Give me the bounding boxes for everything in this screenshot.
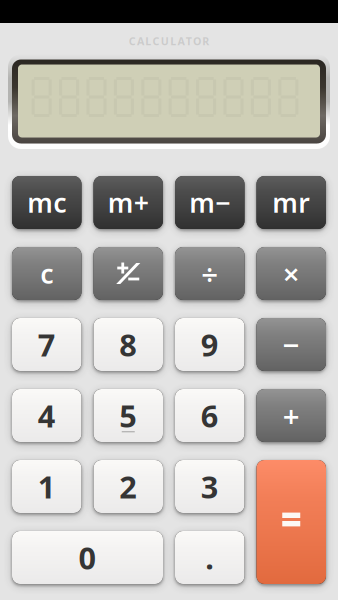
button[interactable]: − <box>256 318 326 371</box>
button[interactable]: 7 <box>12 318 81 371</box>
button[interactable]: 6 <box>175 389 244 442</box>
button[interactable]: m− <box>175 176 244 229</box>
staticText: . <box>205 537 214 578</box>
button[interactable]: 8 <box>93 318 163 371</box>
staticText: 6 <box>201 395 219 436</box>
staticText: m− <box>189 185 230 220</box>
staticText: CALCULATOR <box>129 34 209 48</box>
button[interactable]: 5 <box>93 389 163 442</box>
button[interactable]: 0 <box>12 531 163 584</box>
staticText: 0 <box>78 537 96 578</box>
staticText: 3 <box>201 466 219 507</box>
button[interactable]: 1 <box>12 460 81 513</box>
button[interactable]: ÷ <box>175 247 244 300</box>
button[interactable]: mr <box>256 176 326 229</box>
staticText: 2 <box>119 466 137 507</box>
button[interactable]: × <box>256 247 326 300</box>
button[interactable]: m+ <box>93 176 163 229</box>
staticText: 8 <box>119 324 137 365</box>
staticText: 5 <box>119 395 137 436</box>
button[interactable]: + <box>256 389 326 442</box>
button[interactable]: 9 <box>175 318 244 371</box>
staticText: 7 <box>38 324 56 365</box>
staticText: m+ <box>108 185 149 220</box>
staticText: c <box>40 256 53 291</box>
staticText: 4 <box>38 395 56 436</box>
button[interactable]: plus minus <box>93 247 163 300</box>
staticText: ÷ <box>201 254 218 293</box>
button[interactable]: 3 <box>175 460 244 513</box>
staticText: mc <box>27 185 66 220</box>
staticText: + <box>283 396 300 435</box>
staticText: − <box>283 325 300 364</box>
staticText: 1 <box>38 466 56 507</box>
staticText: mr <box>272 185 310 220</box>
button[interactable]: equals <box>256 460 326 584</box>
button[interactable]: 4 <box>12 389 81 442</box>
button[interactable]: . <box>175 531 244 584</box>
button[interactable]: c <box>12 247 81 300</box>
staticText: × <box>283 254 300 293</box>
staticText: 9 <box>201 324 219 365</box>
button[interactable]: mc <box>12 176 81 229</box>
button[interactable]: 2 <box>93 460 163 513</box>
